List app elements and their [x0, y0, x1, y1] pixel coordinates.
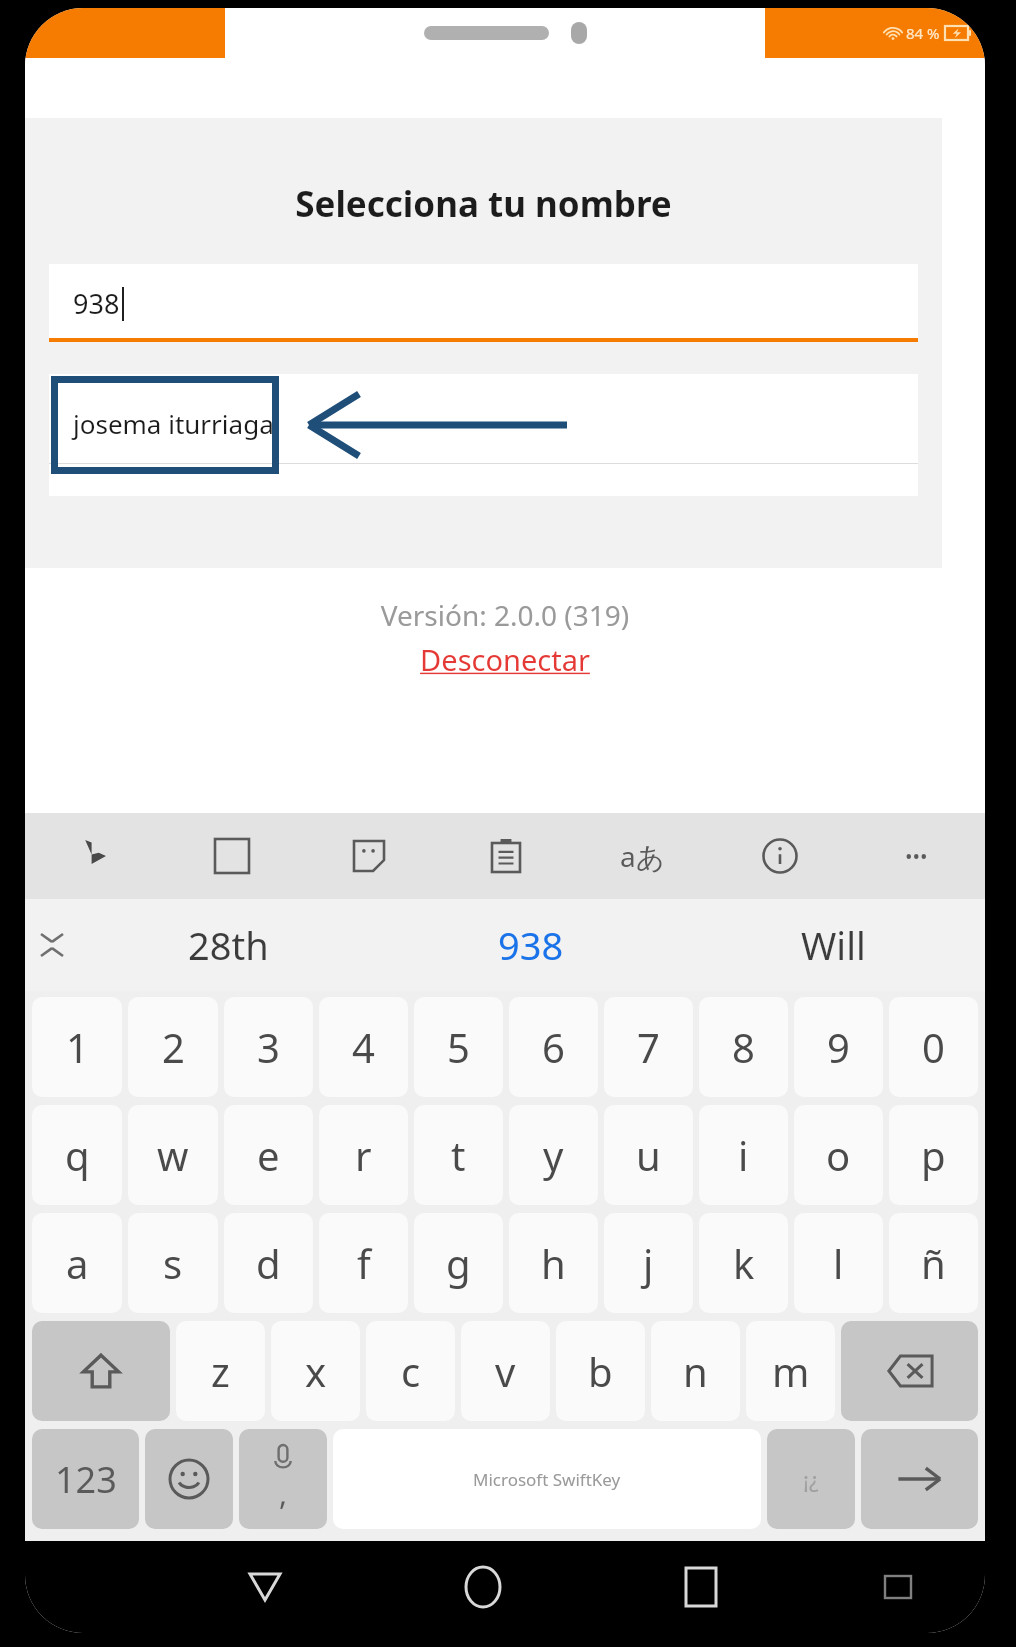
button[interactable]: g [414, 1213, 503, 1313]
button[interactable]: j [604, 1213, 693, 1313]
button[interactable]: e [224, 1105, 313, 1205]
button[interactable]: m [746, 1321, 835, 1421]
staticText: ¡¿ [803, 1464, 819, 1494]
staticText: 938 [73, 285, 120, 322]
button[interactable]: d [224, 1213, 313, 1313]
button[interactable]: 28th [77, 899, 379, 991]
button[interactable]: Space [333, 1429, 761, 1529]
button[interactable]: Enter [861, 1429, 978, 1529]
staticText: i [738, 1128, 749, 1182]
staticText: 4 [352, 1020, 375, 1074]
button[interactable]: o [794, 1105, 883, 1205]
button[interactable]: c [366, 1321, 455, 1421]
staticText: x [305, 1344, 327, 1398]
button[interactable]: a [32, 1213, 122, 1313]
staticText: a [66, 1236, 89, 1290]
button[interactable]: Recents [592, 1541, 810, 1633]
button[interactable]: w [128, 1105, 218, 1205]
button[interactable]: Home [374, 1541, 592, 1633]
button[interactable]: Clipboard [437, 813, 574, 899]
button[interactable]: More options [848, 813, 985, 899]
button[interactable]: ñ [889, 1213, 978, 1313]
button[interactable]: q [32, 1105, 122, 1205]
button[interactable]: Bing search [25, 813, 163, 899]
button[interactable]: 6 [509, 997, 598, 1097]
button[interactable]: josema iturriaga [49, 382, 918, 464]
staticText: 938 [498, 919, 564, 971]
button[interactable]: u [604, 1105, 693, 1205]
button[interactable]: x [271, 1321, 360, 1421]
button[interactable]: Translate [574, 813, 711, 899]
button[interactable]: Voice input [239, 1429, 327, 1529]
staticText: 84 % [906, 23, 940, 43]
button[interactable]: 4 [319, 997, 408, 1097]
staticText: 7 [637, 1020, 660, 1074]
button[interactable]: 8 [699, 997, 788, 1097]
button[interactable]: f [319, 1213, 408, 1313]
staticText: 8 [732, 1020, 755, 1074]
button[interactable]: Desconectar [420, 640, 590, 679]
button[interactable]: 2 [128, 997, 218, 1097]
button[interactable]: 9 [794, 997, 883, 1097]
button[interactable]: z [176, 1321, 265, 1421]
button[interactable]: 938 [379, 899, 682, 991]
staticText: ñ [921, 1236, 946, 1290]
staticText: Versión: 2.0.0 (319) [25, 596, 985, 634]
staticText: aあ [620, 837, 665, 875]
staticText: p [921, 1128, 946, 1182]
button[interactable]: h [509, 1213, 598, 1313]
staticText: 28th [188, 919, 269, 971]
button[interactable]: y [509, 1105, 598, 1205]
button[interactable]: Numbers [32, 1429, 139, 1529]
button[interactable]: Info [711, 813, 848, 899]
button[interactable]: 0 [889, 997, 978, 1097]
staticText: r [355, 1128, 372, 1182]
button[interactable]: Stickers [300, 813, 437, 899]
staticText: l [833, 1236, 844, 1290]
button[interactable]: v [461, 1321, 550, 1421]
button[interactable]: 5 [414, 997, 503, 1097]
staticText: n [683, 1344, 708, 1398]
staticText: 5 [447, 1020, 470, 1074]
button[interactable]: 938 [49, 264, 918, 342]
button[interactable]: i [699, 1105, 788, 1205]
button[interactable]: 3 [224, 997, 313, 1097]
button[interactable]: b [556, 1321, 645, 1421]
staticText: josema iturriaga [73, 406, 274, 441]
button[interactable]: p [889, 1105, 978, 1205]
button[interactable]: t [414, 1105, 503, 1205]
button[interactable]: s [128, 1213, 218, 1313]
staticText: g [446, 1236, 471, 1290]
button[interactable]: k [699, 1213, 788, 1313]
staticText: Microsoft SwiftKey [473, 1468, 621, 1491]
staticText: ••• [905, 843, 928, 870]
button[interactable]: 1 [32, 997, 122, 1097]
button[interactable]: Emoji [145, 1429, 233, 1529]
button[interactable]: n [651, 1321, 740, 1421]
staticText: b [588, 1344, 613, 1398]
button[interactable]: 7 [604, 997, 693, 1097]
button[interactable]: Back [156, 1541, 374, 1633]
button[interactable]: Backspace [841, 1321, 978, 1421]
staticText: Will [801, 919, 866, 971]
button[interactable]: r [319, 1105, 408, 1205]
staticText: , [279, 1473, 288, 1514]
staticText: z [211, 1344, 230, 1398]
staticText: m [772, 1344, 810, 1398]
staticText: 0 [922, 1020, 945, 1074]
staticText: t [451, 1128, 466, 1182]
button[interactable]: GIF [163, 813, 300, 899]
button[interactable]: l [794, 1213, 883, 1313]
button[interactable]: Keyboard switcher [810, 1541, 985, 1633]
staticText: w [157, 1128, 189, 1182]
staticText: s [163, 1236, 183, 1290]
staticText: e [257, 1128, 280, 1182]
button[interactable]: Punctuation [767, 1429, 855, 1529]
button[interactable]: Shift [32, 1321, 170, 1421]
staticText: d [256, 1236, 281, 1290]
staticText: o [826, 1128, 851, 1182]
staticText: k [733, 1236, 755, 1290]
staticText: 3 [257, 1020, 280, 1074]
other: Expand suggestions [39, 932, 65, 958]
button[interactable]: Will [682, 899, 985, 991]
